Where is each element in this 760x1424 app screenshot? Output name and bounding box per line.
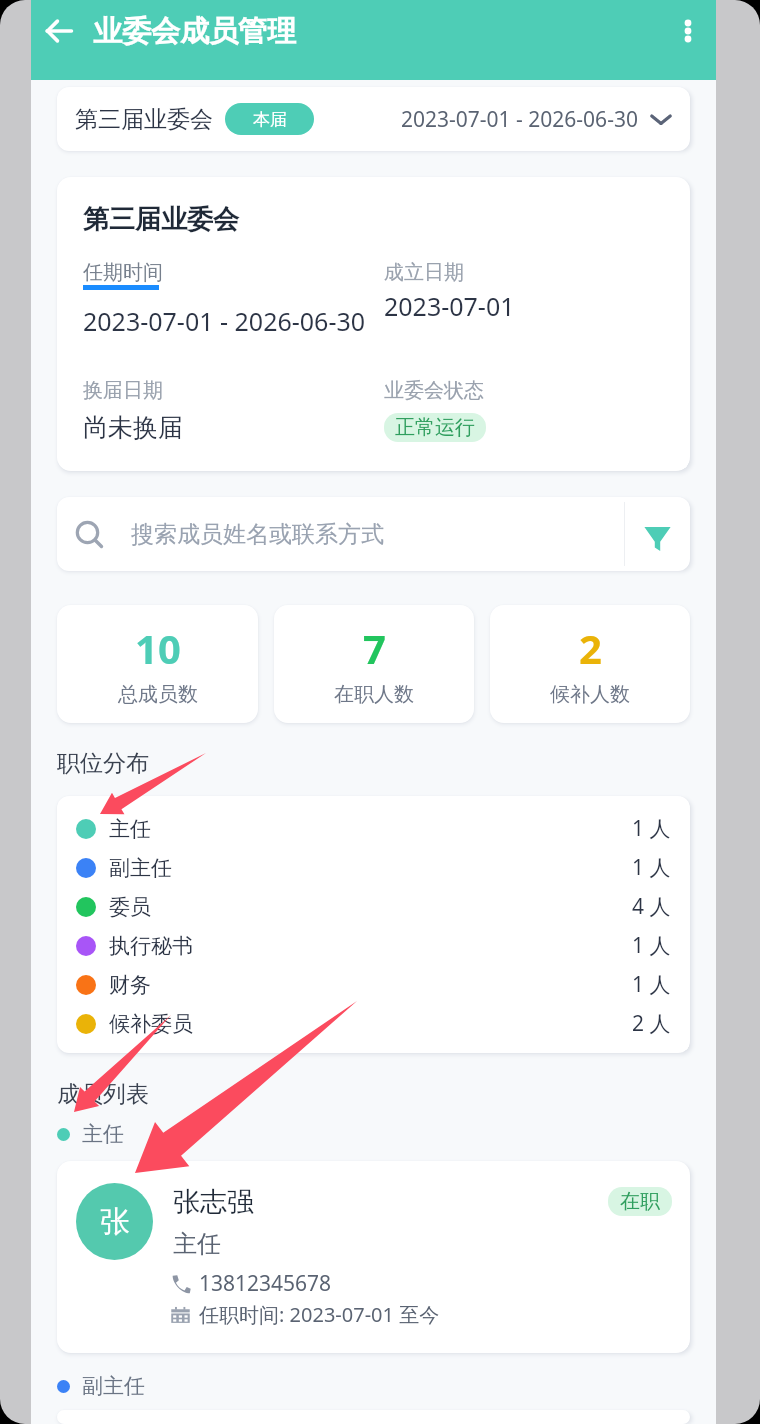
staticText: 4 人	[632, 892, 671, 921]
button[interactable]: 张	[57, 1161, 690, 1353]
staticText: 主任	[82, 1121, 124, 1147]
staticText: 换届日期	[83, 378, 163, 403]
button[interactable]: 执行秘书	[57, 926, 690, 965]
staticText: 张志强	[173, 1185, 254, 1219]
button[interactable]: 主任	[57, 809, 690, 848]
staticText: 1 人	[632, 814, 671, 843]
staticText: 职位分布	[57, 749, 149, 778]
button[interactable]: 第三届业委会	[57, 87, 690, 151]
staticText: 财务	[109, 972, 151, 998]
staticText: 业委会成员管理	[93, 13, 296, 50]
staticText: 委员	[109, 894, 151, 920]
staticText: 在职人数	[334, 682, 414, 707]
button[interactable]: 副主任	[57, 848, 690, 887]
staticText: 第三届业委会	[75, 105, 213, 134]
button[interactable]: 2	[490, 605, 690, 723]
staticText: 候补委员	[109, 1011, 193, 1037]
staticText: 正常运行	[395, 415, 475, 440]
staticText: 成员列表	[57, 1080, 149, 1109]
button[interactable]: Back	[31, 0, 86, 62]
staticText: 2023-07-01	[384, 289, 515, 323]
staticText: 搜索成员姓名或联系方式	[131, 520, 384, 549]
staticText: 主任	[109, 816, 151, 842]
button[interactable]: Filter	[625, 497, 690, 571]
staticText: 副主任	[109, 855, 172, 881]
staticText: 1 人	[632, 931, 671, 960]
staticText: 第三届业委会	[83, 203, 239, 236]
staticText: 在职	[620, 1189, 660, 1214]
staticText: 1 人	[632, 970, 671, 999]
staticText: 2 人	[632, 1009, 671, 1038]
staticText: 2023-07-01 - 2026-06-30	[83, 304, 366, 338]
button[interactable]: 候补委员	[57, 1004, 690, 1043]
button[interactable]: More options	[662, 0, 714, 62]
staticText: 执行秘书	[109, 933, 193, 959]
button[interactable]: 7	[274, 605, 474, 723]
staticText: 本届	[253, 109, 287, 130]
staticText: 候补人数	[550, 682, 630, 707]
staticText: 总成员数	[118, 682, 198, 707]
staticText: 张	[100, 1203, 130, 1241]
button[interactable]: 财务	[57, 965, 690, 1004]
staticText: 成立日期	[384, 260, 464, 285]
staticText: 2023-07-01 - 2026-06-30	[401, 105, 638, 134]
staticText: 任期时间	[83, 260, 163, 285]
staticText: 1 人	[632, 853, 671, 882]
staticText: 10	[135, 621, 181, 675]
staticText: 2	[579, 621, 602, 675]
staticText: 7	[363, 621, 386, 675]
staticText: 主任	[173, 1229, 221, 1259]
staticText: 13812345678	[199, 1269, 332, 1298]
button[interactable]: 委员	[57, 887, 690, 926]
staticText: 业委会状态	[384, 378, 484, 403]
staticText: 任职时间: 2023-07-01 至今	[199, 1301, 440, 1328]
staticText: 副主任	[82, 1373, 145, 1399]
staticText: 尚未换届	[83, 412, 183, 443]
button[interactable]: 10	[57, 605, 258, 723]
